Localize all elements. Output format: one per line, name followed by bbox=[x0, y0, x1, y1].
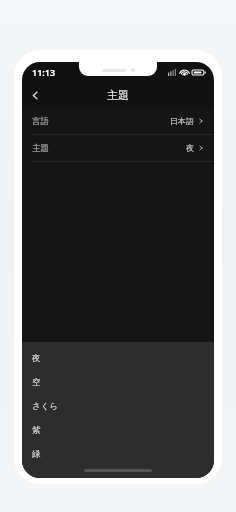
staticText: 夜 bbox=[32, 353, 41, 364]
staticText: 日本語 bbox=[170, 116, 194, 126]
staticText: 緑 bbox=[32, 449, 41, 460]
staticText: 主題 bbox=[32, 143, 49, 154]
staticText: 夜 bbox=[186, 143, 194, 153]
button[interactable]: 紫 bbox=[22, 418, 214, 442]
staticText: 紫 bbox=[32, 425, 41, 436]
staticText: さくら bbox=[32, 401, 59, 412]
button[interactable]: 言語 bbox=[22, 108, 214, 134]
button[interactable]: 緑 bbox=[22, 442, 214, 466]
staticText: 11:13 bbox=[32, 66, 56, 78]
staticText: 主題 bbox=[107, 88, 129, 102]
button[interactable]: 夜 bbox=[22, 346, 214, 370]
staticText: 言語 bbox=[32, 116, 49, 127]
button[interactable]: さくら bbox=[22, 394, 214, 418]
staticText: 空 bbox=[32, 377, 41, 388]
button[interactable]: 主題 bbox=[22, 135, 214, 161]
button[interactable]: Back bbox=[22, 82, 48, 108]
button[interactable]: 空 bbox=[22, 370, 214, 394]
